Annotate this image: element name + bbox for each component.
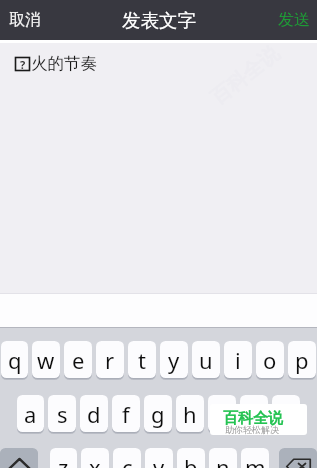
button[interactable]: j bbox=[208, 395, 236, 432]
button[interactable]: x bbox=[81, 448, 109, 468]
staticText: r bbox=[105, 345, 115, 375]
staticText: y bbox=[168, 345, 180, 375]
button[interactable]: i bbox=[224, 341, 252, 378]
staticText: m bbox=[245, 452, 266, 468]
button[interactable]: s bbox=[48, 395, 76, 432]
button[interactable]: u bbox=[192, 341, 220, 378]
staticText: f bbox=[122, 399, 130, 429]
staticText: k bbox=[248, 399, 260, 429]
button[interactable]: n bbox=[209, 448, 237, 468]
button[interactable]: m bbox=[241, 448, 269, 468]
staticText: i bbox=[235, 345, 241, 375]
button[interactable]: l bbox=[272, 395, 300, 432]
staticText: c bbox=[122, 452, 133, 468]
button[interactable]: 发送 bbox=[269, 2, 317, 38]
button[interactable]: f bbox=[112, 395, 140, 432]
staticText: j bbox=[219, 399, 225, 429]
staticText: v bbox=[153, 452, 165, 468]
button[interactable]: a bbox=[17, 395, 44, 432]
button[interactable]: 取消 bbox=[0, 2, 50, 38]
staticText: 发送 bbox=[278, 10, 310, 30]
staticText: a bbox=[24, 399, 37, 429]
staticText: 百科全说 bbox=[223, 409, 283, 428]
button[interactable]: Shift bbox=[0, 448, 38, 468]
staticText: 火的节奏 bbox=[31, 53, 97, 74]
staticText: ? bbox=[20, 57, 26, 72]
staticText: q bbox=[8, 345, 22, 375]
button[interactable]: r bbox=[96, 341, 124, 378]
staticText: 取消 bbox=[9, 10, 41, 30]
staticText: 发表文字 bbox=[122, 9, 196, 32]
staticText: x bbox=[89, 452, 101, 468]
staticText: o bbox=[263, 345, 277, 375]
button[interactable]: e bbox=[64, 341, 92, 378]
button[interactable]: d bbox=[80, 395, 108, 432]
button[interactable]: v bbox=[145, 448, 173, 468]
button[interactable]: w bbox=[32, 341, 60, 378]
staticText: e bbox=[72, 345, 85, 375]
staticText: 助你轻松解决 bbox=[225, 424, 279, 435]
staticText: p bbox=[295, 345, 309, 375]
button[interactable]: Backspace bbox=[279, 448, 317, 468]
button[interactable]: c bbox=[113, 448, 141, 468]
staticText: w bbox=[37, 345, 55, 375]
staticText: s bbox=[57, 399, 68, 429]
button[interactable]: h bbox=[176, 395, 204, 432]
button[interactable]: p bbox=[288, 341, 316, 378]
button[interactable]: g bbox=[144, 395, 172, 432]
button[interactable]: k bbox=[240, 395, 268, 432]
staticText: h bbox=[183, 399, 197, 429]
button[interactable]: t bbox=[128, 341, 156, 378]
staticText: n bbox=[216, 452, 230, 468]
staticText: z bbox=[58, 452, 69, 468]
staticText: b bbox=[184, 452, 198, 468]
button[interactable]: z bbox=[50, 448, 77, 468]
staticText: t bbox=[138, 345, 146, 375]
staticText: g bbox=[151, 399, 165, 429]
button[interactable]: q bbox=[1, 341, 28, 378]
button[interactable]: y bbox=[160, 341, 188, 378]
button[interactable]: o bbox=[256, 341, 284, 378]
staticText: l bbox=[283, 399, 289, 429]
staticText: d bbox=[87, 399, 101, 429]
button[interactable]: b bbox=[177, 448, 205, 468]
staticText: u bbox=[199, 345, 213, 375]
